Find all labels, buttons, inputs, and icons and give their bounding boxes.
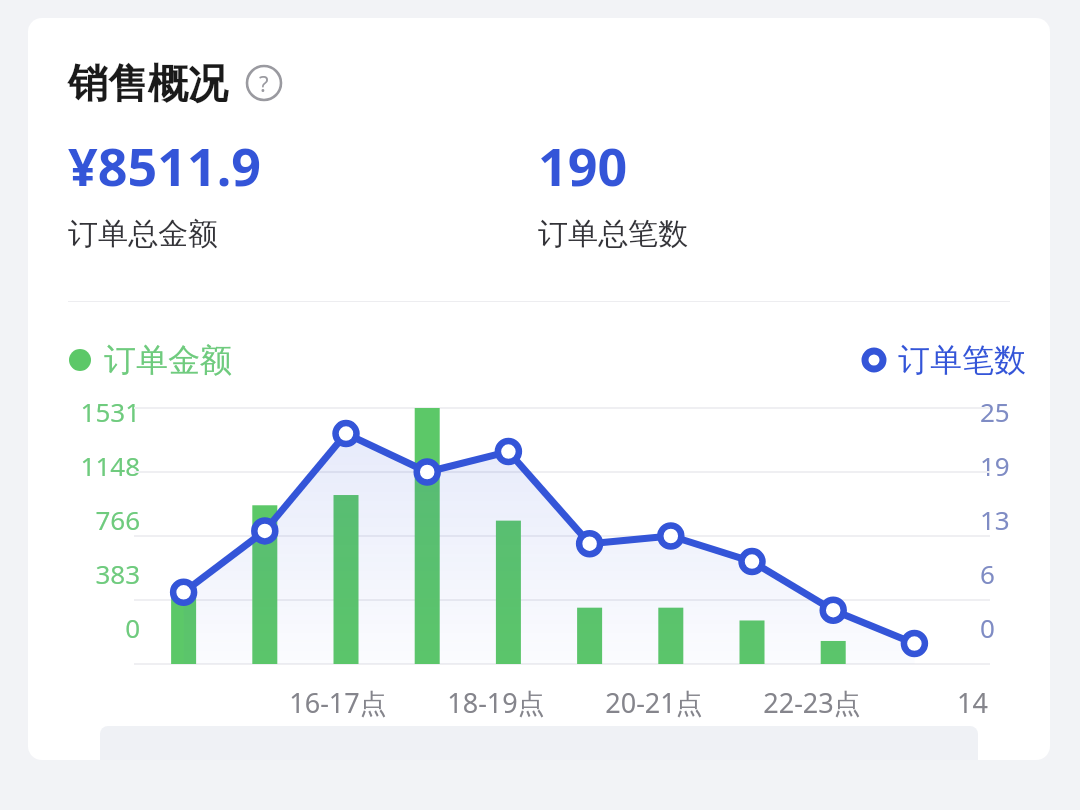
staticText: ? xyxy=(259,68,269,98)
staticText: 20-21点 xyxy=(605,684,703,721)
staticText: 18-19点 xyxy=(447,684,545,721)
staticText: 0 xyxy=(125,610,140,645)
button[interactable]: 帮助说明 xyxy=(244,63,284,103)
staticText: 订单总金额 xyxy=(68,215,218,253)
staticText: 0 xyxy=(980,610,995,645)
button[interactable]: 订单笔数 xyxy=(862,340,1026,380)
staticText: 订单金额 xyxy=(104,340,232,380)
button[interactable]: 订单金额 xyxy=(68,340,232,380)
staticText: ¥8511.9 xyxy=(68,130,262,201)
staticText: 22-23点 xyxy=(763,684,861,721)
staticText: 190 xyxy=(538,130,628,201)
staticText: 19 xyxy=(980,448,1010,483)
staticText: 1148 xyxy=(80,448,140,483)
staticText: 销售概况 xyxy=(68,58,228,108)
staticText: 16-17点 xyxy=(289,684,387,721)
staticText: 25 xyxy=(980,394,1010,429)
staticText: 383 xyxy=(95,556,140,591)
staticText: 订单总笔数 xyxy=(538,215,688,253)
staticText: 13 xyxy=(980,502,1010,537)
staticText: 订单笔数 xyxy=(898,340,1026,380)
staticText: 14 xyxy=(957,684,988,721)
staticText: 1531 xyxy=(80,394,140,429)
staticText: 766 xyxy=(95,502,140,537)
staticText: 6 xyxy=(980,556,995,591)
